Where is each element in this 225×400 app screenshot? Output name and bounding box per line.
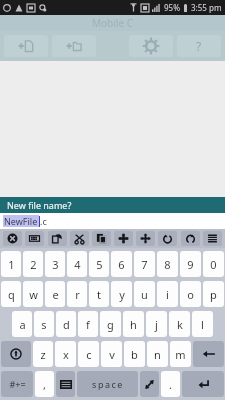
button[interactable]: g [100, 311, 121, 337]
button[interactable]: 6 [111, 251, 132, 277]
button[interactable]: Undo [158, 231, 177, 246]
staticText: 8 [164, 257, 171, 272]
button[interactable]: s [34, 311, 54, 337]
staticText: #+= [9, 378, 26, 390]
button[interactable]: New file [4, 35, 48, 57]
staticText: f [86, 317, 90, 332]
button[interactable]: enter [182, 371, 224, 397]
button[interactable]: expand [140, 371, 159, 397]
button[interactable]: f [78, 311, 98, 337]
button[interactable]: Close [3, 231, 22, 246]
staticText: s [41, 317, 47, 332]
button[interactable]: p [203, 281, 224, 307]
button[interactable]: l [192, 311, 213, 337]
staticText: n [154, 347, 161, 362]
staticText: 2 [30, 257, 37, 272]
button[interactable]: back [193, 341, 224, 367]
button[interactable]: t [89, 281, 109, 307]
staticText: c [86, 347, 92, 362]
button[interactable]: q [1, 281, 21, 307]
button[interactable]: y [111, 281, 132, 307]
staticText: 5 [96, 257, 103, 272]
staticText: .c [40, 215, 47, 227]
staticText: space [92, 378, 124, 390]
button[interactable]: , [35, 371, 54, 397]
staticText: . [169, 377, 172, 392]
button[interactable]: 9 [180, 251, 201, 277]
staticText: b [131, 347, 138, 362]
button[interactable]: space [77, 371, 138, 397]
button[interactable]: Copy [48, 231, 67, 246]
staticText: NewFile [4, 215, 38, 227]
staticText: 9 [187, 257, 194, 272]
button[interactable]: 0 [203, 251, 224, 277]
button[interactable]: w [23, 281, 43, 307]
button[interactable]: o [180, 281, 201, 307]
staticText: , [43, 377, 46, 392]
button[interactable]: 8 [157, 251, 178, 277]
staticText: y [119, 287, 125, 302]
button[interactable]: c [78, 341, 99, 367]
staticText: Mobile C [92, 16, 133, 30]
button[interactable]: h [123, 311, 144, 337]
staticText: t [97, 287, 101, 302]
button[interactable]: Help [177, 35, 221, 57]
staticText: 95% [164, 2, 180, 13]
button[interactable]: r [67, 281, 87, 307]
staticText: g [107, 317, 114, 332]
button[interactable]: k [169, 311, 190, 337]
staticText: r [75, 287, 80, 302]
button[interactable]: m [170, 341, 191, 367]
button[interactable]: Menu [203, 231, 222, 246]
staticText: a [19, 317, 26, 332]
staticText: 3 [52, 257, 59, 272]
button[interactable]: u [134, 281, 155, 307]
staticText: 4 [74, 257, 81, 272]
staticText: l [201, 317, 204, 332]
button[interactable]: shift [1, 341, 31, 367]
button[interactable]: a [12, 311, 32, 337]
button[interactable]: #+= [1, 371, 33, 397]
button[interactable]: . [161, 371, 180, 397]
button[interactable]: Settings [129, 35, 173, 57]
button[interactable]: Keyboard [25, 231, 44, 246]
staticText: z [40, 347, 46, 362]
staticText: d [63, 317, 70, 332]
staticText: h [130, 317, 137, 332]
button[interactable]: 1 [1, 251, 21, 277]
button[interactable]: 5 [89, 251, 109, 277]
staticText: 1 [8, 257, 15, 272]
button[interactable]: d [56, 311, 76, 337]
button[interactable]: Cut [70, 231, 89, 246]
button[interactable]: Paste [92, 231, 111, 246]
button[interactable]: i [157, 281, 178, 307]
staticText: x [63, 347, 69, 362]
staticText: 7 [141, 257, 148, 272]
button[interactable]: 4 [67, 251, 87, 277]
button[interactable]: j [146, 311, 167, 337]
button[interactable]: New folder [52, 35, 96, 57]
staticText: 0 [210, 257, 217, 272]
staticText: m [175, 347, 186, 362]
button[interactable]: Select [136, 231, 155, 246]
staticText: 3:55 pm [191, 2, 222, 13]
button[interactable]: x [55, 341, 76, 367]
button[interactable]: 2 [23, 251, 43, 277]
staticText: j [155, 317, 158, 332]
button[interactable]: z [33, 341, 53, 367]
staticText: k [177, 317, 183, 332]
button[interactable]: b [124, 341, 145, 367]
staticText: e [52, 287, 59, 302]
button[interactable]: n [147, 341, 168, 367]
button[interactable]: 7 [134, 251, 155, 277]
button[interactable]: e [45, 281, 65, 307]
staticText: w [29, 287, 38, 302]
button[interactable]: v [101, 341, 122, 367]
button[interactable]: Move [114, 231, 133, 246]
staticText: New file name? [7, 199, 72, 211]
button[interactable]: kb [56, 371, 75, 397]
staticText: p [210, 287, 217, 302]
staticText: v [109, 347, 115, 362]
button[interactable]: Redo [181, 231, 200, 246]
button[interactable]: 3 [45, 251, 65, 277]
